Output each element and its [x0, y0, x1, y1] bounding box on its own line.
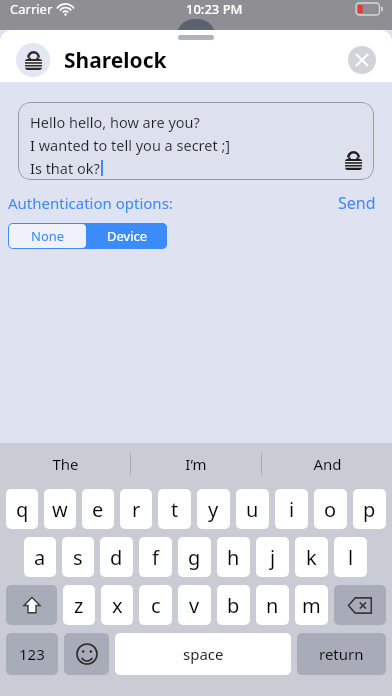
staticText: n	[266, 592, 279, 619]
staticText: j	[270, 544, 276, 571]
staticText: Authentication options:	[8, 193, 173, 213]
staticText: Sharelock	[64, 46, 167, 75]
button[interactable]: n	[256, 585, 289, 625]
button[interactable]: x	[101, 585, 133, 625]
button[interactable]: None	[9, 224, 86, 248]
staticText: d	[110, 544, 123, 571]
staticText: h	[227, 544, 240, 571]
button[interactable]: And	[262, 443, 392, 485]
button[interactable]: v	[178, 585, 211, 625]
staticText: l	[348, 544, 354, 571]
button[interactable]: f	[139, 537, 172, 577]
staticText: e	[92, 496, 104, 523]
button[interactable]: j	[256, 537, 289, 577]
button[interactable]: 123	[6, 633, 58, 675]
button[interactable]: Backspace	[334, 585, 386, 625]
staticText: t	[171, 496, 179, 523]
button[interactable]: Hello hello, how are you?	[18, 102, 374, 180]
staticText: b	[227, 592, 240, 619]
button[interactable]: c	[139, 585, 172, 625]
button[interactable]: m	[295, 585, 328, 625]
staticText: 10:23 PM	[186, 0, 243, 18]
button[interactable]: d	[100, 537, 133, 577]
staticText: q	[16, 496, 29, 523]
staticText: Hello hello, how are you?	[30, 112, 200, 132]
staticText: 123	[19, 644, 45, 664]
staticText: space	[183, 644, 224, 664]
staticText: g	[188, 544, 201, 571]
button[interactable]: Close	[348, 46, 376, 74]
staticText: I’m	[185, 454, 207, 474]
staticText: k	[306, 544, 317, 571]
button[interactable]: space	[115, 633, 291, 675]
button[interactable]: Shift	[6, 585, 57, 625]
button[interactable]: r	[120, 489, 152, 529]
staticText: y	[208, 496, 219, 523]
staticText: Carrier	[10, 0, 53, 18]
button[interactable]: z	[63, 585, 95, 625]
staticText: m	[302, 592, 321, 619]
button[interactable]: a	[24, 537, 56, 577]
button[interactable]: p	[353, 489, 386, 529]
button[interactable]: Sharelock app icon	[16, 43, 50, 77]
staticText: z	[74, 592, 84, 619]
button[interactable]: o	[314, 489, 347, 529]
button[interactable]: return	[297, 633, 386, 675]
staticText: u	[246, 496, 259, 523]
button[interactable]: w	[44, 489, 76, 529]
button[interactable]: l	[334, 537, 367, 577]
button[interactable]: i	[275, 489, 308, 529]
button[interactable]: y	[197, 489, 230, 529]
button[interactable]: Emoji	[64, 633, 109, 675]
staticText: c	[151, 592, 161, 619]
button[interactable]: k	[295, 537, 328, 577]
button[interactable]: s	[62, 537, 94, 577]
button[interactable]: h	[217, 537, 250, 577]
staticText: r	[132, 496, 141, 523]
staticText: The	[52, 454, 79, 474]
staticText: x	[112, 592, 123, 619]
staticText: p	[363, 496, 376, 523]
button[interactable]: q	[6, 489, 38, 529]
button[interactable]: e	[82, 489, 114, 529]
staticText: Is that ok?	[30, 158, 100, 178]
staticText: Device	[107, 227, 148, 245]
button[interactable]: u	[236, 489, 269, 529]
button[interactable]: t	[158, 489, 191, 529]
staticText: a	[34, 544, 46, 571]
button[interactable]: b	[217, 585, 250, 625]
staticText: s	[73, 544, 83, 571]
button[interactable]: Send	[330, 190, 384, 216]
button[interactable]: Device	[87, 223, 167, 249]
staticText: w	[52, 496, 68, 523]
button[interactable]: The	[0, 443, 130, 485]
staticText: return	[319, 644, 364, 664]
staticText: i	[289, 496, 295, 523]
button[interactable]: I’m	[131, 443, 261, 485]
button[interactable]: g	[178, 537, 211, 577]
staticText: Send	[338, 192, 376, 214]
staticText: v	[189, 592, 200, 619]
staticText: None	[31, 227, 65, 245]
staticText: f	[152, 544, 159, 571]
staticText: o	[324, 496, 337, 523]
staticText: I wanted to tell you a secret ;]	[30, 135, 231, 155]
staticText: And	[313, 454, 342, 474]
